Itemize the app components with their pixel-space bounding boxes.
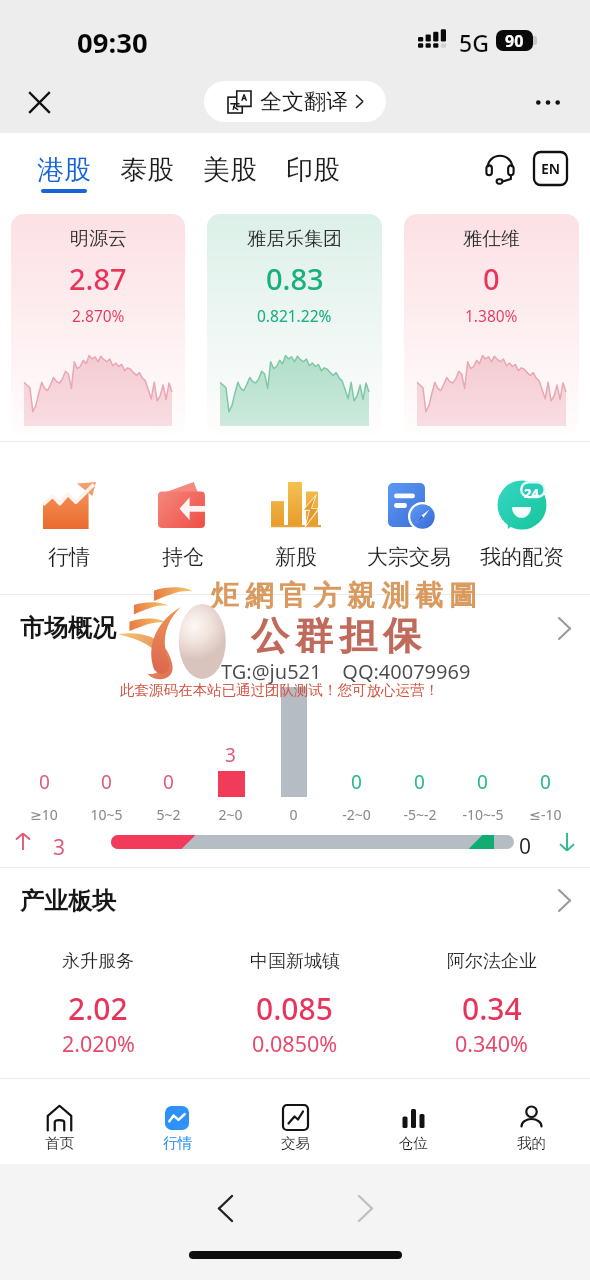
button[interactable]: 泰股: [105, 153, 188, 193]
staticText: 我的配资: [480, 544, 564, 570]
staticText: 2.020%: [62, 1029, 135, 1058]
staticText: 明源云: [70, 227, 127, 251]
button[interactable]: 我的: [472, 1079, 590, 1164]
button[interactable]: 雅仕维: [404, 214, 579, 435]
staticText: 3: [225, 742, 236, 768]
button[interactable]: 中国新城镇: [196, 950, 393, 1070]
staticText: -10~-5: [462, 805, 504, 824]
staticText: 行情: [48, 544, 90, 570]
staticText: 0: [163, 769, 174, 795]
staticText: 1.380%: [465, 305, 518, 326]
staticText: 仓位: [399, 1134, 428, 1152]
staticText: 3: [53, 833, 66, 855]
staticText: 0: [101, 769, 112, 795]
staticText: 0: [540, 769, 551, 795]
staticText: 市场概况: [20, 613, 116, 643]
staticText: 持仓: [162, 544, 204, 570]
staticText: EN: [541, 159, 561, 178]
staticText: -2~0: [342, 805, 371, 824]
button[interactable]: Close: [16, 79, 62, 125]
button[interactable]: 永升服务: [0, 950, 196, 1070]
staticText: 0: [39, 769, 50, 795]
staticText: 印股: [286, 153, 340, 187]
button[interactable]: 阿尔法企业: [393, 950, 590, 1070]
staticText: 0.340%: [455, 1029, 528, 1058]
staticText: 美股: [203, 153, 257, 187]
staticText: 0.821.22%: [257, 305, 332, 326]
button[interactable]: 美股: [188, 153, 271, 193]
staticText: 09:30: [77, 24, 148, 61]
staticText: 雅居乐集团: [247, 227, 342, 251]
staticText: 永升服务: [62, 950, 134, 973]
staticText: 0.34: [462, 988, 522, 1029]
button[interactable]: 港股: [22, 153, 105, 193]
staticText: 全文翻译: [260, 88, 348, 116]
button[interactable]: 仓位: [354, 1079, 472, 1164]
staticText: 新股: [275, 544, 317, 570]
staticText: 我的: [517, 1134, 546, 1152]
button[interactable]: 首页: [0, 1079, 118, 1164]
staticText: -5~-2: [403, 805, 437, 824]
staticText: 5~2: [156, 805, 181, 824]
staticText: 产业板块: [20, 886, 116, 916]
button[interactable]: 市场概况: [0, 595, 590, 661]
button[interactable]: 行情: [12, 481, 126, 570]
button[interactable]: 交易: [236, 1079, 354, 1164]
button[interactable]: 产业板块: [0, 868, 590, 933]
staticText: 0: [519, 832, 532, 854]
staticText: ≤-10: [529, 805, 562, 824]
button[interactable]: Forward: [342, 1185, 388, 1231]
button[interactable]: Customer service: [482, 151, 518, 187]
staticText: 5G: [459, 27, 489, 58]
staticText: 2.02: [68, 988, 128, 1029]
staticText: 0: [414, 769, 425, 795]
staticText: 0.83: [266, 259, 324, 298]
button[interactable]: More options: [528, 82, 568, 122]
button[interactable]: 大宗交易: [352, 481, 465, 570]
button[interactable]: 雅居乐集团: [207, 214, 382, 435]
staticText: 此套源码在本站已通过团队测试！您可放心运营！: [120, 681, 439, 699]
staticText: 0: [483, 259, 500, 298]
staticText: 雅仕维: [463, 227, 520, 251]
staticText: 90: [505, 30, 524, 51]
button[interactable]: 明源云: [11, 214, 185, 435]
button[interactable]: 24: [465, 481, 578, 570]
button[interactable]: 新股: [239, 481, 352, 570]
staticText: 公群担保: [248, 612, 424, 660]
button[interactable]: 全文翻译: [204, 81, 386, 122]
button[interactable]: 行情: [118, 1079, 236, 1164]
staticText: 0: [289, 805, 298, 824]
staticText: 0.085: [256, 988, 333, 1029]
staticText: 0: [477, 769, 488, 795]
button[interactable]: Back: [202, 1185, 248, 1231]
staticText: 大宗交易: [367, 544, 451, 570]
staticText: 港股: [37, 153, 91, 187]
staticText: 首页: [45, 1134, 74, 1152]
staticText: 24: [524, 484, 539, 502]
staticText: 2.870%: [72, 305, 125, 326]
staticText: 2~0: [218, 805, 243, 824]
staticText: 2.87: [69, 259, 127, 298]
staticText: 0: [351, 769, 362, 795]
button[interactable]: 持仓: [126, 481, 239, 570]
staticText: 泰股: [120, 153, 174, 187]
staticText: 炬網官方親測截圖: [208, 578, 480, 613]
button[interactable]: Switch language to English: [534, 152, 567, 185]
staticText: 0.0850%: [252, 1029, 338, 1058]
staticText: TG:@ju521 QQ:40079969: [221, 658, 471, 685]
staticText: 中国新城镇: [250, 950, 340, 973]
staticText: ≥10: [30, 805, 58, 824]
staticText: 行情: [163, 1134, 192, 1152]
staticText: 10~5: [90, 805, 123, 824]
staticText: 阿尔法企业: [447, 950, 537, 973]
button[interactable]: 印股: [271, 153, 354, 193]
staticText: 交易: [281, 1134, 310, 1152]
